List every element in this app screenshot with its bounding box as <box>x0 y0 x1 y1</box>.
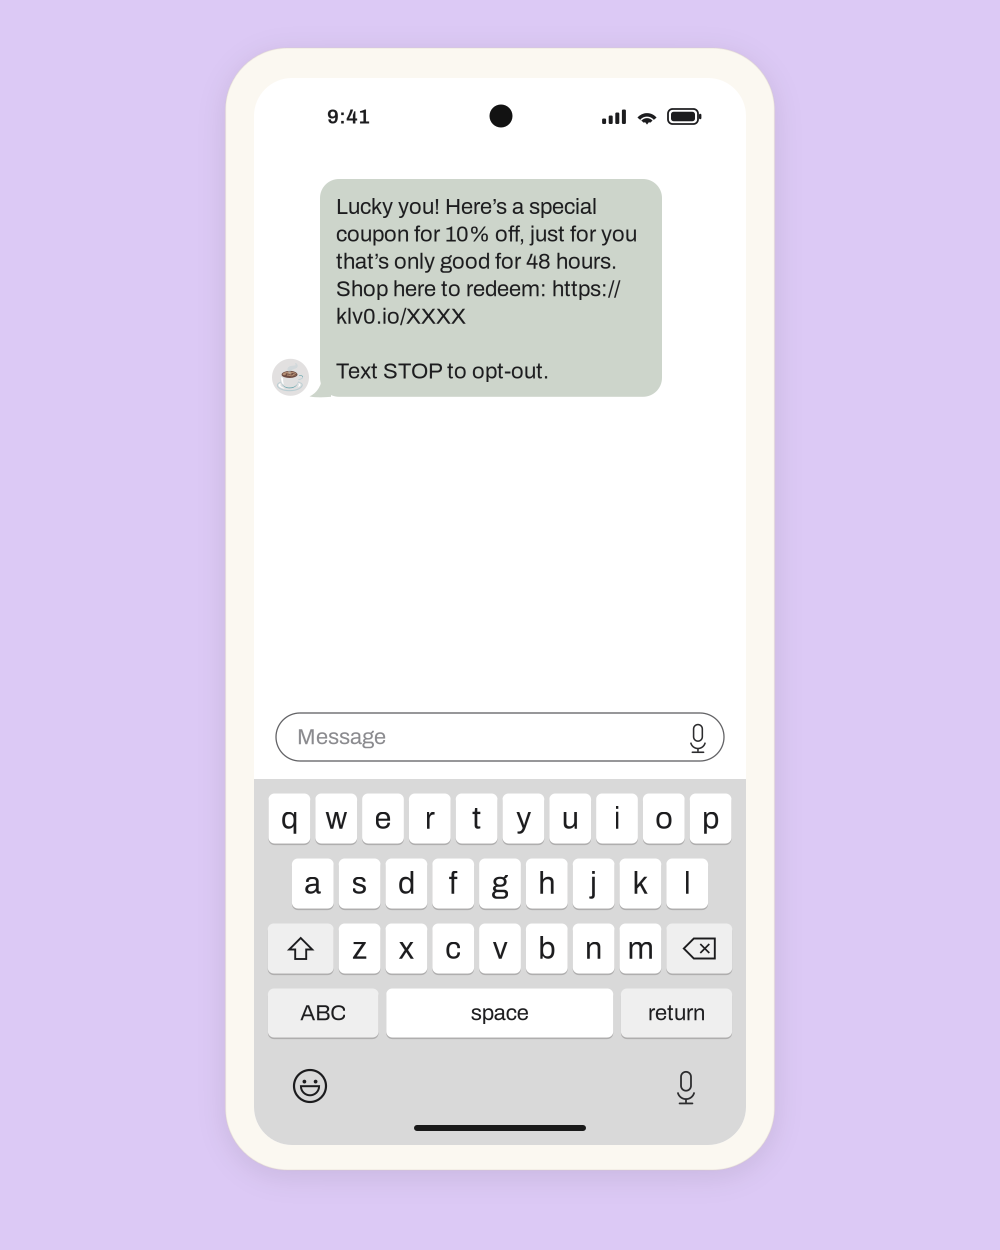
button[interactable]: n <box>573 922 614 975</box>
staticText: l <box>684 867 691 900</box>
button[interactable]: Delete <box>666 922 732 975</box>
button[interactable]: i <box>596 792 638 845</box>
staticText: f <box>449 867 458 900</box>
staticText: z <box>352 932 367 965</box>
button[interactable]: p <box>690 792 731 845</box>
button[interactable]: h <box>526 857 568 910</box>
button[interactable]: l <box>666 857 708 910</box>
button[interactable]: z <box>339 922 380 975</box>
button[interactable]: c <box>432 922 474 975</box>
button[interactable]: Message <box>276 713 724 761</box>
button[interactable]: k <box>619 857 661 910</box>
staticText: o <box>655 802 672 835</box>
staticText: Text STOP to opt-out. <box>336 359 549 383</box>
staticText: v <box>492 932 507 965</box>
staticText: coupon for 10% off, just for you <box>336 222 637 246</box>
button[interactable]: e <box>362 792 404 845</box>
button[interactable]: return <box>621 987 732 1039</box>
staticText: k <box>632 867 648 900</box>
button[interactable]: q <box>268 792 310 845</box>
staticText: ☕ <box>274 363 306 392</box>
staticText: klv0.io/XXXX <box>336 304 466 328</box>
staticText: x <box>398 932 414 965</box>
button[interactable]: Shift <box>268 922 334 975</box>
button[interactable]: t <box>456 792 497 845</box>
staticText: h <box>538 867 555 900</box>
staticText: m <box>627 932 653 965</box>
staticText: 9:41 <box>327 105 370 128</box>
button[interactable]: y <box>502 792 544 845</box>
button[interactable]: v <box>479 922 521 975</box>
button[interactable]: x <box>385 922 427 975</box>
button[interactable]: f <box>432 857 474 910</box>
staticText: s <box>352 867 368 900</box>
button[interactable]: ABC <box>268 987 379 1039</box>
staticText: Message <box>297 725 386 749</box>
button[interactable]: Emoji keyboard <box>290 1066 330 1106</box>
staticText: that’s only good for 48 hours. <box>336 249 617 273</box>
staticText: y <box>516 802 531 835</box>
staticText: return <box>648 1001 705 1025</box>
button[interactable]: b <box>526 922 568 975</box>
button[interactable]: r <box>409 792 451 845</box>
button[interactable]: space <box>386 987 613 1039</box>
button[interactable]: j <box>573 857 614 910</box>
staticText: g <box>491 867 508 900</box>
staticText: e <box>374 802 391 835</box>
staticText: Shop here to redeem: https:// <box>336 277 620 301</box>
staticText: a <box>304 867 321 900</box>
staticText: u <box>562 802 579 835</box>
button[interactable]: s <box>339 857 380 910</box>
staticText: w <box>325 802 347 835</box>
staticText: d <box>398 867 415 900</box>
button[interactable]: m <box>619 922 661 975</box>
button[interactable]: o <box>643 792 685 845</box>
staticText: b <box>538 932 555 965</box>
staticText: space <box>471 1001 529 1025</box>
staticText: i <box>613 802 620 835</box>
staticText: n <box>585 932 602 965</box>
staticText: ABC <box>300 1001 346 1025</box>
staticText: p <box>702 802 719 835</box>
staticText: Lucky you! Here’s a special <box>336 195 597 219</box>
staticText: q <box>281 802 298 835</box>
button[interactable]: d <box>385 857 427 910</box>
button[interactable]: Dictate <box>666 1066 706 1106</box>
staticText: c <box>445 932 461 965</box>
button[interactable]: w <box>315 792 357 845</box>
staticText: t <box>472 802 481 835</box>
staticText: r <box>425 802 435 835</box>
button[interactable]: a <box>292 857 334 910</box>
button[interactable]: g <box>479 857 521 910</box>
staticText: j <box>590 867 597 900</box>
button[interactable]: u <box>549 792 591 845</box>
